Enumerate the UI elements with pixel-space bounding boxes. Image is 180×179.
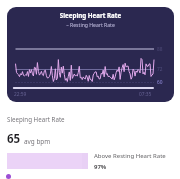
staticText: Sleeping Heart Rate: [7, 11, 174, 19]
staticText: 88: [157, 46, 163, 53]
staticText: 60: [157, 79, 163, 86]
staticText: – Resting Heart Rate: [7, 22, 174, 29]
staticText: 22:59: [14, 91, 27, 98]
staticText: 65: [7, 131, 21, 147]
staticText: Sleeping Heart Rate: [7, 115, 65, 123]
staticText: 97%: [94, 163, 107, 171]
button[interactable]: Sleeping Heart Rate: [7, 7, 174, 102]
staticText: 07:35: [139, 91, 152, 98]
staticText: avg bpm: [24, 137, 51, 146]
staticText: Above Resting Heart Rate: [94, 152, 166, 160]
staticText: 72: [157, 66, 163, 73]
